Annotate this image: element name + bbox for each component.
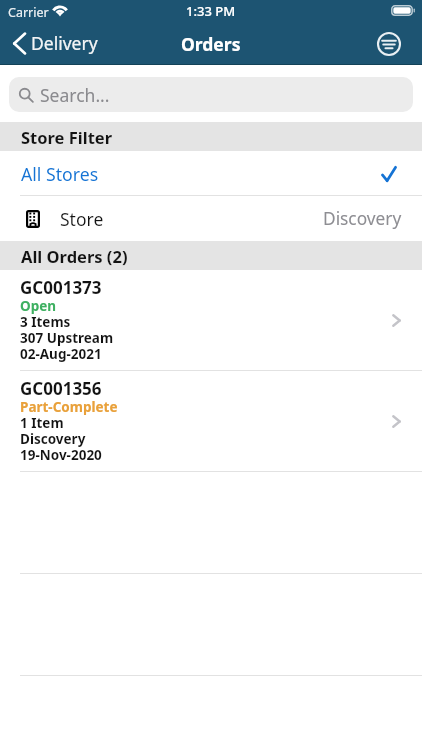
staticText: Search... xyxy=(40,83,110,107)
staticText: All Stores xyxy=(21,162,99,186)
button[interactable]: Search... xyxy=(9,77,413,112)
staticText: 02-Aug-2021 xyxy=(20,345,102,363)
staticText: Store Filter xyxy=(21,126,113,148)
staticText: 1 Item xyxy=(20,414,64,432)
staticText: 19-Nov-2020 xyxy=(20,446,102,464)
staticText: Open xyxy=(20,297,57,315)
staticText: Part-Complete xyxy=(20,398,118,416)
button[interactable]: GC001373 xyxy=(0,270,422,371)
staticText: Orders xyxy=(181,32,241,56)
staticText: Discovery xyxy=(323,207,402,231)
staticText: Carrier xyxy=(8,4,49,21)
staticText: Delivery xyxy=(31,31,98,55)
staticText: GC001373 xyxy=(20,276,102,299)
button[interactable]: GC001356 xyxy=(0,371,422,472)
staticText: 1:33 PM xyxy=(186,2,236,20)
staticText: GC001356 xyxy=(20,377,102,400)
button[interactable]: Filter xyxy=(375,30,403,58)
staticText: Store xyxy=(60,207,104,231)
staticText: All Orders (2) xyxy=(21,245,128,267)
button[interactable]: Delivery xyxy=(0,31,106,60)
staticText: 307 Upstream xyxy=(20,329,114,347)
button[interactable]: Store xyxy=(0,196,422,241)
button[interactable]: All Stores xyxy=(0,151,422,196)
staticText: 3 Items xyxy=(20,313,71,331)
staticText: Discovery xyxy=(20,430,86,448)
